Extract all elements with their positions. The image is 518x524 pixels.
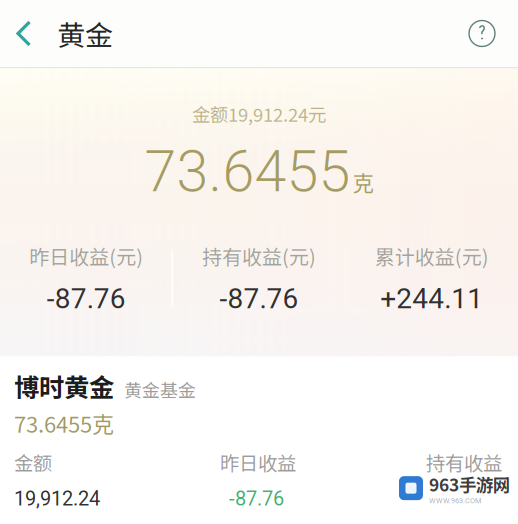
staticText: 金额 [14, 448, 52, 476]
staticText: -87.76 [229, 487, 284, 510]
button[interactable]: Help [446, 0, 518, 67]
staticText: 金额19,912.24元 [192, 100, 326, 127]
staticText: 963手游网 [429, 471, 510, 496]
staticText: 昨日收益 [220, 448, 296, 476]
button[interactable]: Back [0, 0, 57, 67]
staticText: 持有收益(元) [202, 241, 316, 270]
staticText: -87.76 [47, 282, 126, 315]
staticText: 持有收益 [426, 448, 502, 476]
staticText: 昨日收益(元) [29, 241, 143, 270]
staticText: 73.6455克 [14, 407, 114, 439]
staticText: 73.6455 [144, 138, 350, 205]
staticText: 黄金 [57, 13, 113, 54]
staticText: -87.76 [219, 282, 298, 315]
staticText: 黄金基金 [124, 376, 196, 402]
staticText: 19,912.24 [14, 487, 100, 510]
staticText: WWW.963.COM [429, 496, 481, 505]
staticText: +244.11 [380, 282, 483, 315]
staticText: 博时黄金 [14, 367, 114, 404]
staticText: 克 [352, 166, 373, 197]
staticText: 累计收益(元) [375, 241, 489, 270]
button[interactable]: 黄金 [57, 0, 113, 67]
